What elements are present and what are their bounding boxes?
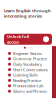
button[interactable]: Grammar Practice <box>0 56 56 61</box>
button[interactable]: Daily Vocabulary <box>0 61 56 67</box>
staticText: Reading Practice <box>13 78 41 83</box>
staticText: Short Conversations <box>13 67 48 72</box>
button[interactable]: Idioms and Phrases <box>0 88 56 94</box>
staticText: Beginner Stories <box>13 51 42 56</box>
staticText: Unlock full access <box>7 34 29 44</box>
staticText: Daily Vocabulary <box>13 62 42 67</box>
button[interactable]: Beginner Stories <box>0 51 56 56</box>
button[interactable]: Listening Skills <box>0 72 56 78</box>
button[interactable]: Pronunciation Lab <box>0 83 56 88</box>
staticText: Idioms and Phrases <box>13 89 47 94</box>
staticText: Listening Skills <box>13 72 38 78</box>
staticText: Pronunciation Lab <box>13 83 43 88</box>
button[interactable]: Short Conversations <box>0 67 56 72</box>
staticText: Grammar Practice <box>13 56 47 61</box>
staticText: Learn English through interesting storie… <box>4 8 51 19</box>
button[interactable]: Reading Practice <box>0 78 56 83</box>
